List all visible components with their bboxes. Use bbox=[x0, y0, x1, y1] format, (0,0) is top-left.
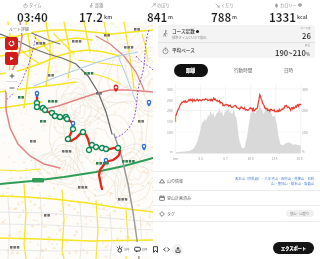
staticText: km bbox=[173, 156, 178, 161]
button[interactable]: Comment bbox=[133, 246, 149, 253]
staticText: 190~210 bbox=[275, 47, 306, 58]
staticText: km bbox=[104, 13, 113, 21]
staticText: 1331 bbox=[269, 9, 297, 22]
button[interactable]: タグ bbox=[153, 206, 320, 221]
staticText: のぼり bbox=[157, 2, 170, 8]
staticText: 100 bbox=[167, 130, 173, 135]
staticText: コース定数 bbox=[172, 28, 195, 35]
staticText: m bbox=[170, 150, 173, 154]
staticText: 841 bbox=[147, 9, 168, 22]
staticText: 300 bbox=[302, 87, 308, 92]
button[interactable]: 平均ペース bbox=[158, 43, 315, 58]
button[interactable]: 山の情報 bbox=[153, 172, 320, 190]
staticText: kcal bbox=[297, 13, 308, 21]
staticText: 788 bbox=[211, 9, 232, 22]
staticText: カロリー bbox=[280, 2, 297, 8]
staticText: 0件 bbox=[142, 247, 148, 252]
staticText: 100 bbox=[302, 130, 308, 135]
button[interactable]: 登山・山登り bbox=[286, 210, 314, 217]
staticText: タグ bbox=[167, 211, 175, 217]
staticText: 距離 bbox=[95, 2, 104, 8]
button[interactable]: ルート詳細 bbox=[6, 25, 32, 33]
staticText: % bbox=[302, 150, 305, 154]
button[interactable]: Replay route bbox=[5, 37, 18, 50]
staticText: 300 bbox=[167, 87, 173, 92]
staticText: 250 bbox=[167, 98, 173, 103]
staticText: 距離 bbox=[186, 67, 196, 74]
staticText: 登山計画済み bbox=[167, 195, 191, 201]
staticText: コース定 bbox=[300, 26, 311, 30]
staticText: 平均ペース bbox=[172, 47, 275, 54]
staticText: 標準タイム07:19で算出 bbox=[172, 35, 207, 40]
staticText: m bbox=[232, 13, 238, 21]
button[interactable]: Play animation bbox=[5, 52, 18, 65]
button[interactable]: 行動時間 bbox=[229, 64, 258, 77]
staticText: 150 bbox=[167, 119, 173, 124]
staticText: 6.7 bbox=[223, 156, 228, 161]
staticText: くだり bbox=[221, 2, 234, 8]
staticText: m bbox=[168, 13, 174, 21]
staticText: 17.2 bbox=[79, 9, 104, 22]
button[interactable]: コース定数 bbox=[158, 25, 315, 42]
staticText: 0件 bbox=[124, 247, 130, 252]
staticText: タイム bbox=[29, 2, 42, 8]
button[interactable]: Bookmark bbox=[151, 246, 160, 253]
staticText: 200 bbox=[302, 108, 308, 113]
button[interactable]: 日時 bbox=[279, 64, 299, 77]
button[interactable]: Zoom out bbox=[6, 82, 17, 93]
staticText: 行動時間 bbox=[234, 67, 253, 74]
staticText: ルート詳細 bbox=[9, 26, 29, 32]
button[interactable]: エクスポート bbox=[273, 242, 314, 254]
staticText: 03:40 bbox=[17, 9, 48, 22]
staticText: エクスポート bbox=[281, 245, 306, 251]
button[interactable]: Embed bbox=[162, 246, 171, 253]
button[interactable]: 登山計画済み bbox=[153, 191, 320, 205]
staticText: 天王山（京馬嶽）・八王子山・吉向山・花神山・日向 山・裏日山・栃本山・高倉山 bbox=[188, 176, 314, 186]
staticText: 16.8 bbox=[296, 156, 303, 161]
button[interactable]: Zoom in bbox=[6, 70, 17, 81]
staticText: 3.3 bbox=[198, 156, 203, 161]
staticText: 山の情報 bbox=[167, 178, 183, 184]
staticText: 200 bbox=[167, 108, 173, 113]
staticText: 13.4 bbox=[271, 156, 278, 161]
button[interactable]: Share bbox=[172, 244, 183, 255]
button[interactable]: Clap bbox=[115, 246, 131, 253]
staticText: 登山・山登り bbox=[290, 211, 310, 216]
staticText: 10.0 bbox=[247, 156, 254, 161]
staticText: % bbox=[306, 51, 311, 57]
staticText: 日時 bbox=[284, 67, 294, 74]
staticText: 割合 bbox=[305, 43, 311, 47]
staticText: 26 bbox=[302, 30, 311, 41]
button[interactable]: 距離 bbox=[174, 64, 208, 77]
